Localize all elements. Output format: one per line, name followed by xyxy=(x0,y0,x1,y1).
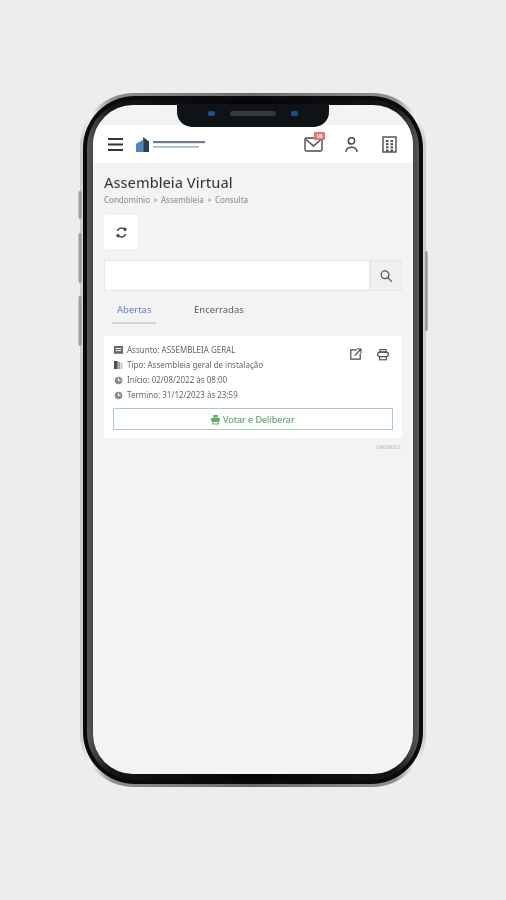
button[interactable]: Menu xyxy=(104,133,126,155)
staticText: Votar e Deliberar xyxy=(223,413,295,425)
staticText: Termino: 31/12/2023 às 23:59 xyxy=(127,389,238,400)
button[interactable]: Atualizar xyxy=(104,215,138,249)
staticText: Abertas xyxy=(117,303,152,316)
button[interactable]: Perfil xyxy=(338,131,364,157)
button[interactable]: Mensagens xyxy=(300,131,326,157)
button[interactable]: Condomínio xyxy=(376,131,402,157)
staticText: Assunto: ASSEMBLEIA GERAL xyxy=(127,344,236,355)
staticText: Consulta xyxy=(215,194,249,205)
staticText: Início: 02/08/2022 às 08:00 xyxy=(127,374,228,385)
staticText: Assembleia Virtual xyxy=(104,172,233,192)
button[interactable] xyxy=(104,260,370,291)
button[interactable]: Votar e Deliberar xyxy=(113,408,393,430)
staticText: Encerradas xyxy=(194,303,244,316)
button[interactable] xyxy=(136,137,205,152)
button[interactable]: Abertas xyxy=(104,296,164,331)
staticText: 96 xyxy=(317,133,323,140)
button[interactable]: Pesquisar xyxy=(370,260,402,291)
button[interactable]: Encerradas xyxy=(186,296,252,323)
button[interactable]: Imprimir xyxy=(373,344,393,364)
staticText: Condomínio xyxy=(104,194,150,205)
staticText: » xyxy=(204,195,215,205)
staticText: Assembleia xyxy=(161,194,204,205)
staticText: Tipo: Assembleia geral de instalação xyxy=(127,359,264,370)
staticText: » xyxy=(150,195,161,205)
staticText: O4O09201 xyxy=(93,444,401,451)
button[interactable]: Editar xyxy=(345,344,365,364)
